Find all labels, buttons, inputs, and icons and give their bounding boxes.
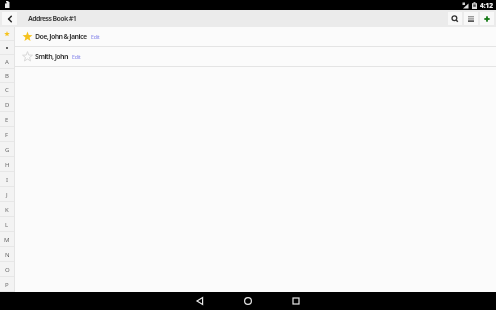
staticText: K [5,206,9,214]
button[interactable]: Doe, John & Janice [15,27,496,46]
button[interactable] [464,12,478,25]
staticText: 4:12 [480,1,493,10]
staticText: J [6,191,8,199]
staticText: E [5,116,9,124]
staticText: C [5,86,9,94]
staticText: F [5,131,9,139]
staticText: L [5,221,9,229]
button[interactable] [176,292,224,310]
staticText: M [4,236,10,244]
staticText: G [5,146,10,154]
button[interactable] [448,12,462,25]
button[interactable]: I [0,172,14,187]
button[interactable]: C [0,83,14,97]
staticText: Edit [72,53,81,60]
staticText: D [5,101,10,109]
button[interactable]: N [0,247,14,262]
button[interactable]: Smith, John [15,47,496,66]
button[interactable]: B [0,69,14,83]
staticText: Doe, John & Janice [35,32,87,42]
staticText: A [5,58,9,66]
staticText: Address Book #1 [28,14,77,24]
staticText: O [5,266,10,274]
button[interactable]: P [0,277,14,292]
button[interactable] [0,27,14,41]
button[interactable] [0,41,14,55]
button[interactable]: D [0,97,14,112]
button[interactable]: Edit [72,53,81,60]
button[interactable]: F [0,127,14,142]
button[interactable]: J [0,187,14,202]
button[interactable] [224,292,272,310]
button[interactable]: O [0,262,14,277]
button[interactable]: A [0,55,14,69]
button[interactable]: L [0,217,14,232]
button[interactable]: M [0,232,14,247]
staticText: I [6,176,9,184]
staticText: P [5,281,9,289]
staticText: B [5,72,9,80]
button[interactable]: G [0,142,14,157]
button[interactable]: K [0,202,14,217]
staticText: N [5,251,10,259]
button[interactable]: H [0,157,14,172]
button[interactable] [272,292,320,310]
button[interactable] [2,12,17,25]
staticText: Smith, John [35,52,68,62]
staticText: Edit [91,33,100,40]
button[interactable]: E [0,112,14,127]
button[interactable]: Edit [91,33,100,40]
staticText: H [5,161,10,169]
button[interactable] [480,12,494,25]
